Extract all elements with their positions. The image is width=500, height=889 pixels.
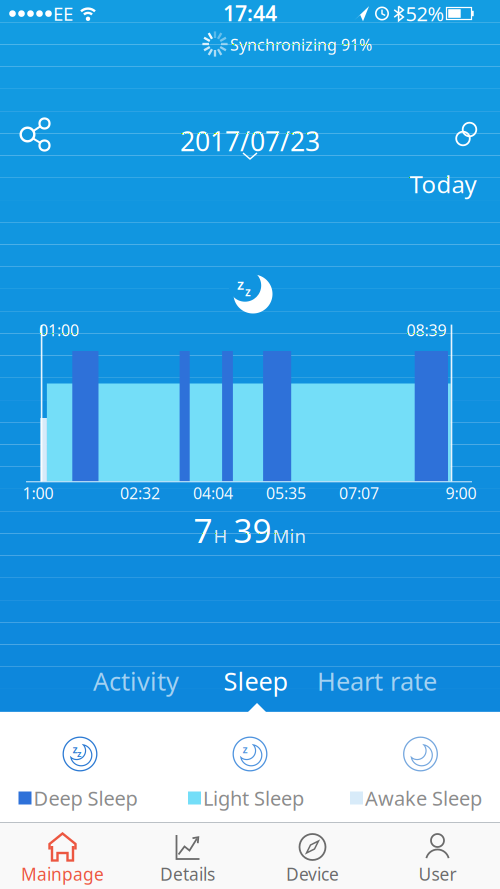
staticText: 04:04 [193, 482, 233, 504]
staticText: Details [160, 862, 215, 885]
staticText: 05:35 [266, 482, 306, 504]
staticText: z [72, 742, 77, 756]
staticText: Synchronizing 91% [230, 34, 372, 55]
staticText: z [77, 747, 82, 760]
staticText: 52% [405, 0, 444, 27]
button[interactable]: Device [250, 822, 375, 889]
button[interactable]: Today [409, 168, 476, 200]
staticText: EE [53, 1, 73, 26]
staticText: Device [286, 862, 339, 885]
staticText: 07:07 [339, 482, 379, 504]
staticText: 2017/07/23 [180, 123, 320, 159]
staticText: 39 [233, 508, 271, 552]
button[interactable]: 2017/07/23 [125, 116, 375, 168]
button[interactable]: Activity [81, 661, 191, 701]
button[interactable] [448, 117, 484, 151]
staticText: Mainpage [21, 862, 104, 885]
staticText: 9:00 [445, 482, 476, 504]
button[interactable] [11, 114, 55, 154]
button[interactable]: User [375, 822, 500, 889]
staticText: Sleep [223, 664, 288, 698]
staticText: Min [272, 523, 306, 548]
staticText: z [242, 742, 247, 756]
staticText: Light Sleep [203, 785, 304, 811]
staticText: 01:00 [39, 319, 79, 341]
button[interactable]: Mainpage [0, 822, 125, 889]
staticText: Activity [93, 664, 179, 698]
staticText: z [245, 283, 251, 299]
staticText: 7 [193, 508, 212, 552]
staticText: Deep Sleep [33, 785, 137, 811]
staticText: z [237, 274, 244, 294]
button[interactable]: Sleep [206, 661, 306, 701]
button[interactable]: Heart rate [317, 661, 437, 701]
staticText: 02:32 [120, 482, 160, 504]
staticText: 17:44 [223, 0, 277, 27]
staticText: 08:39 [406, 319, 446, 341]
staticText: User [418, 862, 456, 885]
button[interactable]: Details [125, 822, 250, 889]
staticText: Heart rate [317, 664, 437, 698]
staticText: H [213, 523, 227, 548]
staticText: Awake Sleep [365, 785, 482, 811]
staticText: Today [409, 168, 476, 200]
staticText: 1:00 [22, 482, 53, 504]
